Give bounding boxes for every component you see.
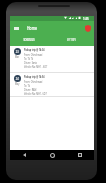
staticText: Mar: [15, 55, 19, 59]
staticText: SCHEDULES: [23, 38, 35, 42]
staticText: From: Chinchwad: [24, 52, 42, 56]
staticText: Driver: RAM: [24, 87, 36, 91]
staticText: To: Tk Tk: [24, 56, 33, 60]
staticText: 1:35: [83, 16, 89, 21]
staticText: From: Chinchwad: [24, 79, 42, 83]
button[interactable]: Emergency SOS: [81, 21, 94, 35]
staticText: Pickup trip @ 14:54: [24, 75, 44, 79]
staticText: To: Tk: [24, 83, 31, 87]
staticText: 23: [16, 49, 19, 53]
staticText: Vehicle No: MH1 - 6D7: [24, 64, 48, 68]
button[interactable]: Open navigation menu: [10, 21, 23, 35]
button[interactable]: Recent apps: [73, 150, 87, 160]
button[interactable]: 23: [10, 46, 94, 72]
button[interactable]: Home: [45, 150, 59, 160]
button[interactable]: 24: [10, 73, 94, 96]
staticText: 24: [16, 76, 19, 80]
button[interactable]: MY TRIPS: [50, 34, 92, 45]
staticText: Vehicle No: MH1- 6D7: [24, 91, 47, 95]
staticText: MY TRIPS: [67, 38, 76, 42]
staticText: May: [15, 82, 20, 86]
button[interactable]: Back: [17, 150, 31, 160]
staticText: Driver: Sanic: [24, 60, 37, 64]
button[interactable]: SCHEDULES: [8, 34, 50, 45]
staticText: Home: [27, 25, 37, 31]
staticText: Pickup trip @ 14:34: [24, 48, 44, 52]
